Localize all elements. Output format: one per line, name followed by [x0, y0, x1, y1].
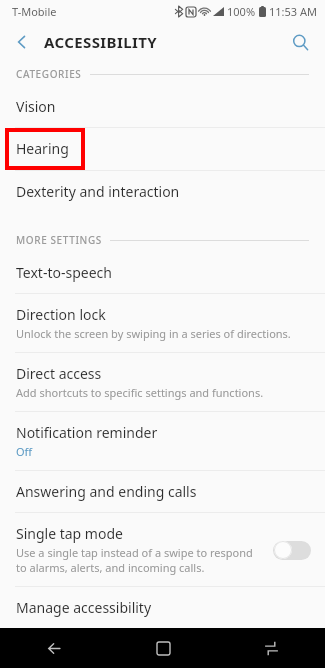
- button[interactable]: Home: [109, 628, 217, 668]
- staticText: 11:53 AM: [269, 4, 317, 19]
- staticText: Off: [16, 444, 33, 459]
- staticText: Answering and ending calls: [16, 482, 197, 501]
- staticText: MORE SETTINGS: [16, 233, 102, 247]
- staticText: Dexterity and interaction: [16, 182, 180, 201]
- staticText: ACCESSIBILITY: [44, 32, 158, 52]
- button[interactable]: Single tap mode toggle: [273, 540, 311, 560]
- button[interactable]: Vision: [0, 86, 325, 127]
- button[interactable]: Back: [6, 26, 38, 58]
- button[interactable]: Dexterity and interaction: [0, 171, 325, 212]
- button[interactable]: Manage accessibility: [0, 587, 325, 628]
- staticText: Text-to-speech: [16, 263, 112, 282]
- button[interactable]: Search: [283, 25, 317, 59]
- staticText: Notification reminder: [16, 423, 158, 442]
- button[interactable]: Text-to-speech: [0, 252, 325, 293]
- button[interactable]: Notification reminder: [0, 412, 325, 470]
- button[interactable]: Single tap mode: [0, 513, 325, 586]
- button[interactable]: Back: [0, 628, 109, 668]
- staticText: Add shortcuts to specific settings and f…: [16, 385, 264, 400]
- staticText: Single tap mode: [16, 524, 123, 543]
- button[interactable]: Answering and ending calls: [0, 471, 325, 512]
- button[interactable]: Hearing: [0, 128, 325, 169]
- button[interactable]: Direction lock: [0, 294, 325, 352]
- button[interactable]: Direct access: [0, 353, 325, 411]
- staticText: Use a single tap instead of a swipe to r…: [16, 545, 253, 575]
- staticText: Unlock the screen by swiping in a series…: [16, 326, 291, 341]
- staticText: CATEGORIES: [16, 67, 82, 81]
- staticText: T-Mobile: [12, 4, 57, 19]
- staticText: 100%: [227, 4, 256, 19]
- staticText: Vision: [16, 97, 56, 116]
- staticText: Direct access: [16, 364, 102, 383]
- staticText: Manage accessibility: [16, 598, 152, 617]
- staticText: Hearing: [16, 139, 69, 158]
- staticText: Direction lock: [16, 305, 106, 324]
- button[interactable]: Recents: [217, 628, 325, 668]
